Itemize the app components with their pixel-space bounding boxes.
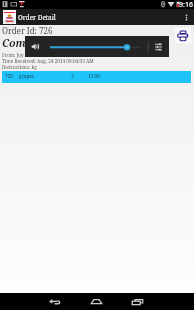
staticText: Order Id: 726 bbox=[2, 25, 53, 36]
staticText: grapes bbox=[19, 73, 34, 79]
button[interactable] bbox=[44, 36, 148, 57]
button[interactable]: Sound settings bbox=[148, 36, 169, 57]
button[interactable]: Back bbox=[34, 293, 75, 310]
staticText: 2 bbox=[71, 73, 74, 79]
button[interactable]: 726 bbox=[2, 71, 191, 83]
staticText: 726 bbox=[5, 73, 13, 79]
button[interactable]: Home bbox=[76, 293, 117, 310]
staticText: From: Joy bbox=[2, 52, 24, 58]
button[interactable]: More options bbox=[178, 9, 194, 25]
button[interactable]: Volume bbox=[25, 36, 44, 57]
staticText: 9:16 bbox=[179, 0, 193, 9]
staticText: Complete bbox=[2, 36, 52, 50]
staticText: Order Detail bbox=[18, 13, 56, 22]
staticText: 11.00 bbox=[88, 73, 100, 79]
staticText: Time Received: Aug, 24 2014 09:04:03 AM bbox=[2, 58, 94, 64]
button[interactable]: Print bbox=[175, 28, 191, 43]
button[interactable]: Recent apps bbox=[117, 293, 158, 310]
staticText: Instructions: kg bbox=[2, 64, 37, 70]
